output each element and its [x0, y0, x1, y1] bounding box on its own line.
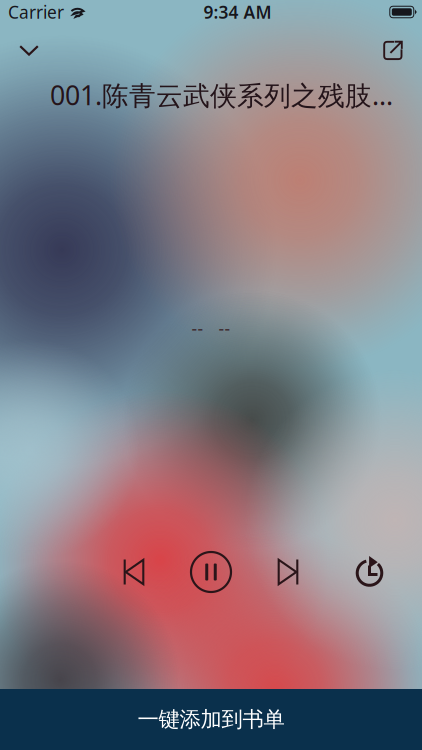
button[interactable]: Share [364, 24, 422, 76]
button[interactable]: Collapse player [0, 24, 58, 77]
staticText: Carrier [8, 0, 64, 23]
button[interactable]: Sleep timer [342, 544, 398, 600]
button[interactable]: 一键添加到书单 [0, 689, 422, 750]
staticText: 一键添加到书单 [137, 706, 284, 733]
staticText: -- [191, 317, 203, 340]
button[interactable]: Previous track [106, 544, 162, 600]
staticText: -- [218, 317, 230, 340]
staticText: 001.陈青云武侠系列之残肢令 求... [50, 77, 408, 113]
button[interactable]: Next track [260, 544, 316, 600]
staticText: 9:34 AM [203, 0, 271, 23]
button[interactable]: Pause [183, 544, 239, 600]
